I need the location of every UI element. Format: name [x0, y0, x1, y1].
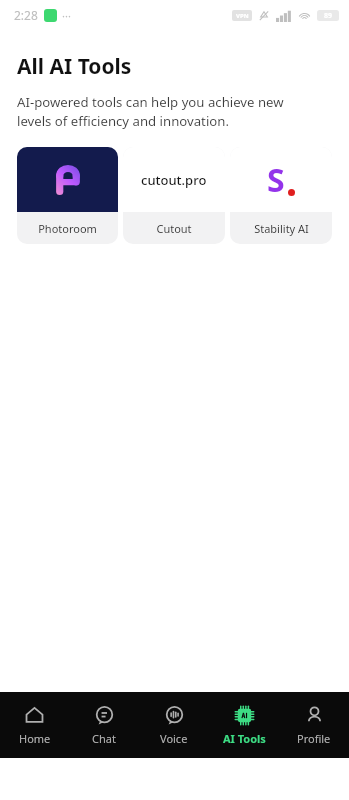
staticText: AI-powered tools can help you achieve ne… [17, 93, 284, 130]
staticText: All AI Tools [17, 52, 132, 81]
staticText: AI Tools [223, 731, 266, 746]
button[interactable]: S [230, 147, 332, 244]
button[interactable]: Profile [279, 705, 349, 746]
other: Voice [164, 705, 185, 726]
other: Chat [94, 705, 115, 726]
button[interactable]: Home [0, 705, 69, 746]
staticText: ··· [62, 8, 71, 23]
staticText: Profile [297, 731, 331, 746]
other: AI Tools [234, 705, 255, 726]
button[interactable]: Voice [139, 705, 209, 746]
staticText: Cutout [156, 221, 192, 236]
staticText: S [267, 158, 285, 202]
button[interactable]: Photoroom [17, 147, 118, 244]
button[interactable]: Chat [69, 705, 139, 746]
button[interactable]: AI Tools [209, 705, 279, 746]
staticText: Stability AI [254, 221, 309, 236]
other: Home [24, 705, 45, 726]
staticText: VPN [236, 12, 249, 20]
staticText: 2:28 [14, 7, 38, 23]
staticText: Chat [92, 731, 116, 746]
button[interactable]: cutout.pro [123, 147, 225, 244]
staticText: Home [19, 731, 51, 746]
staticText: Voice [160, 731, 188, 746]
staticText: cutout.pro [141, 171, 207, 189]
staticText: 89 [324, 11, 333, 21]
other: Profile [304, 705, 325, 726]
staticText: Photoroom [38, 221, 97, 236]
